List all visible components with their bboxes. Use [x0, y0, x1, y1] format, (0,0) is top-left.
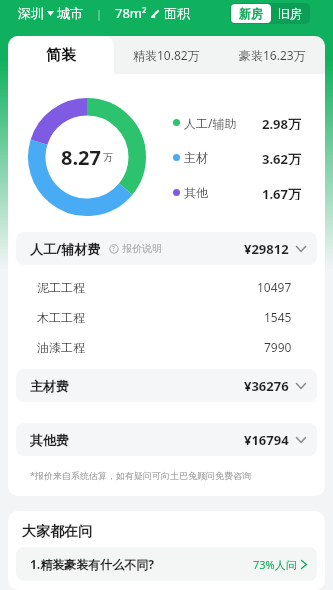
- button[interactable]: 油漆工程: [8, 332, 325, 362]
- staticText: 1.精装豪装有什么不同?: [30, 556, 154, 572]
- staticText: ¥36276: [244, 377, 289, 395]
- staticText: 简装: [46, 46, 76, 65]
- staticText: |: [96, 6, 103, 21]
- staticText: 7990: [264, 339, 292, 355]
- staticText: 1545: [264, 309, 292, 325]
- staticText: ¥29812: [244, 240, 289, 258]
- staticText: 城市: [57, 5, 83, 21]
- button[interactable]: 78m²: [115, 4, 190, 22]
- staticText: 豪装16.23万: [239, 47, 306, 63]
- staticText: 人工/辅材费: [30, 240, 101, 258]
- button[interactable]: 木工工程: [8, 302, 325, 332]
- staticText: 主材: [184, 150, 208, 165]
- staticText: 1.67万: [262, 185, 301, 200]
- staticText: 深圳: [18, 5, 44, 21]
- button[interactable]: 豪装16.23万: [219, 36, 325, 74]
- staticText: 其他费: [30, 432, 69, 448]
- staticText: 78m²: [115, 4, 147, 22]
- button[interactable]: 精装10.82万: [114, 36, 219, 74]
- staticText: 精装10.82万: [133, 47, 200, 63]
- staticText: 人工/辅助: [184, 115, 237, 130]
- button[interactable]: 人工/辅材费: [16, 232, 317, 265]
- staticText: 主材费: [30, 378, 69, 394]
- staticText: ?: [112, 244, 116, 254]
- staticText: 2.98万: [262, 115, 301, 130]
- button[interactable]: 简装: [8, 36, 114, 74]
- staticText: 万: [103, 151, 113, 164]
- button[interactable]: 旧房: [271, 4, 309, 23]
- staticText: ¥16794: [244, 431, 289, 449]
- button[interactable]: 深圳: [18, 5, 83, 21]
- button[interactable]: 泥工工程: [8, 272, 325, 302]
- staticText: 面积: [164, 5, 190, 21]
- staticText: 3.62万: [262, 150, 301, 165]
- button[interactable]: 新房: [231, 4, 271, 23]
- button[interactable]: 其他费: [16, 423, 317, 456]
- staticText: 其他: [184, 185, 208, 200]
- staticText: 10497: [257, 279, 292, 295]
- staticText: *报价来自系统估算，如有疑问可向土巴兔顾问免费咨询: [30, 469, 251, 481]
- staticText: 旧房: [278, 6, 302, 21]
- staticText: 泥工工程: [37, 280, 85, 295]
- staticText: 报价说明: [122, 242, 162, 255]
- staticText: 新房: [239, 6, 263, 21]
- staticText: 8.27: [61, 144, 101, 171]
- staticText: 大家都在问: [22, 523, 92, 541]
- button[interactable]: 1.精装豪装有什么不同?: [16, 547, 317, 581]
- button[interactable]: 主材费: [16, 369, 317, 402]
- staticText: 油漆工程: [37, 340, 85, 355]
- staticText: 73%人问: [253, 557, 297, 572]
- staticText: 木工工程: [37, 310, 85, 325]
